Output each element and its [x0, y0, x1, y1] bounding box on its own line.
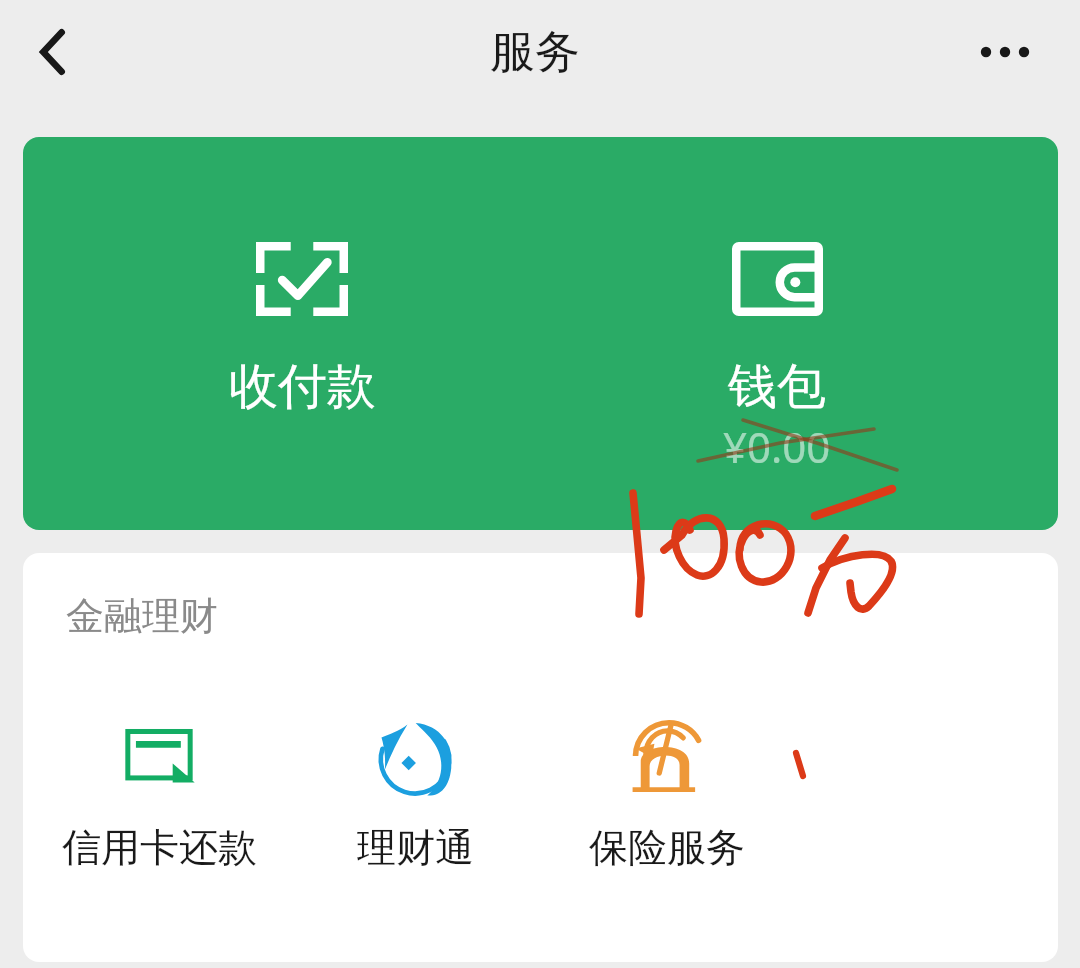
- staticText: ¥0.00: [723, 418, 831, 475]
- staticText: 钱包: [728, 356, 826, 418]
- button[interactable]: Back: [10, 10, 94, 94]
- staticText: 金融理财: [66, 592, 218, 640]
- staticText: 收付款: [229, 356, 376, 418]
- button[interactable]: 保险服务: [540, 719, 794, 872]
- staticText: 理财通: [357, 823, 474, 872]
- button[interactable]: 钱包: [477, 137, 1058, 530]
- button[interactable]: More options: [963, 10, 1047, 94]
- staticText: 服务: [490, 24, 580, 81]
- staticText: 信用卡还款: [62, 823, 257, 872]
- staticText: 保险服务: [589, 823, 745, 872]
- button[interactable]: 信用卡还款: [32, 719, 286, 872]
- button[interactable]: 理财通: [288, 719, 542, 872]
- button[interactable]: 收付款: [23, 137, 602, 530]
